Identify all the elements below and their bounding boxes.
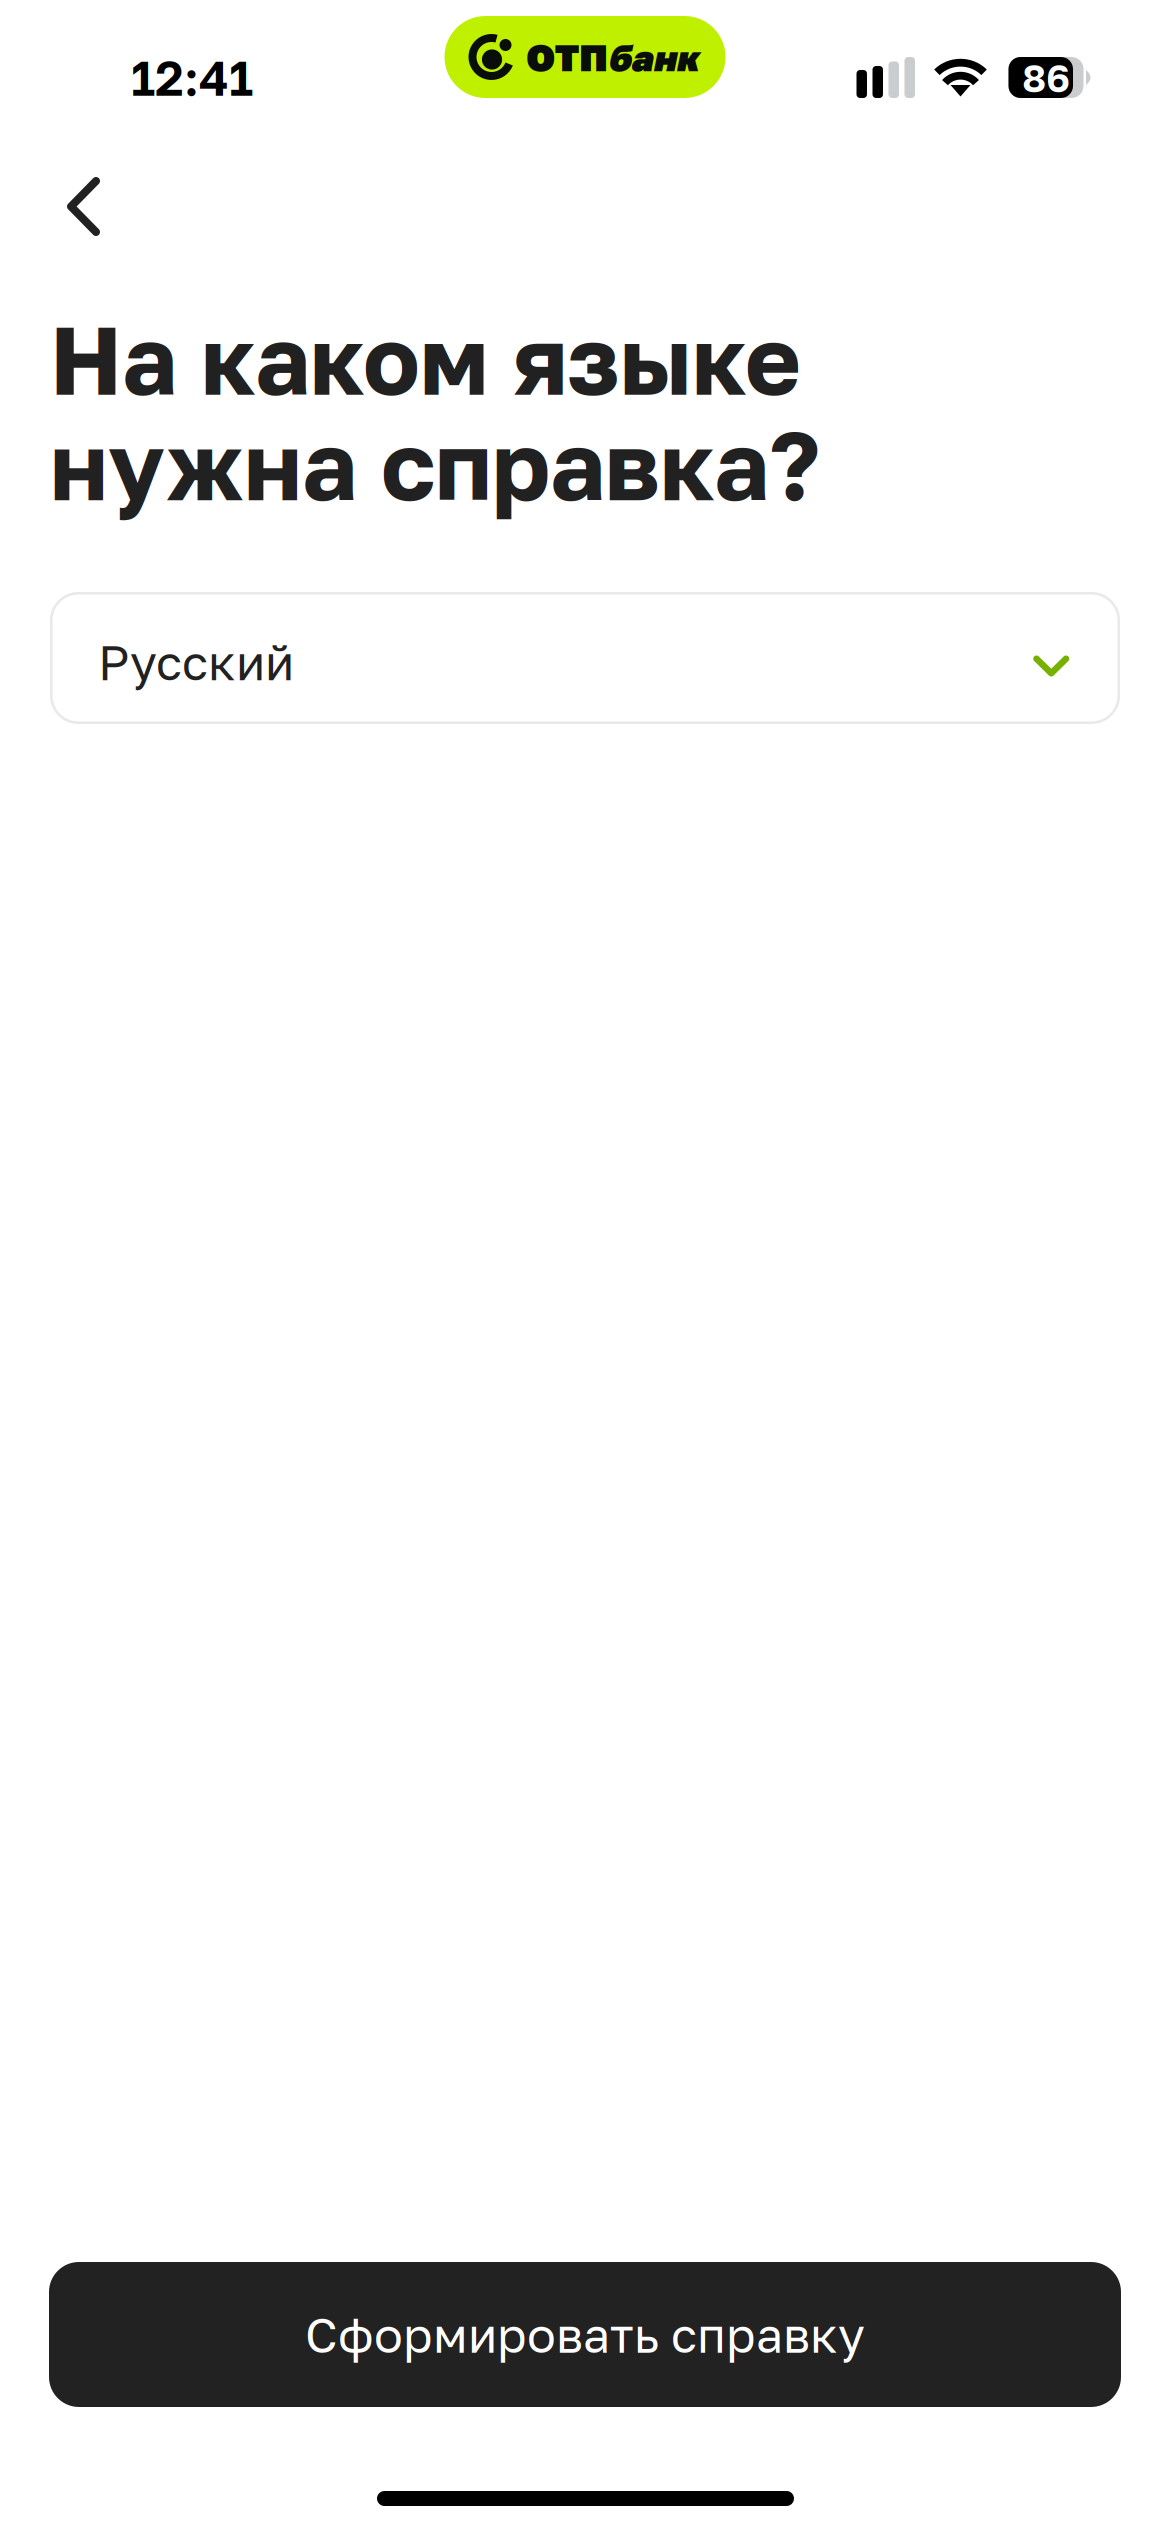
button[interactable]: Сформировать справку (49, 2262, 1121, 2407)
staticText: ОТПбанк (526, 35, 698, 79)
staticText: 86 (1022, 54, 1070, 101)
staticText: На каком языке (50, 302, 801, 416)
staticText: Русский (98, 633, 294, 691)
button[interactable]: Русский (50, 592, 1120, 724)
staticText: Сформировать справку (305, 2306, 865, 2363)
staticText: нужна справка? (50, 408, 820, 521)
button[interactable]: Back (40, 146, 147, 267)
staticText: 12:41 (131, 49, 253, 106)
